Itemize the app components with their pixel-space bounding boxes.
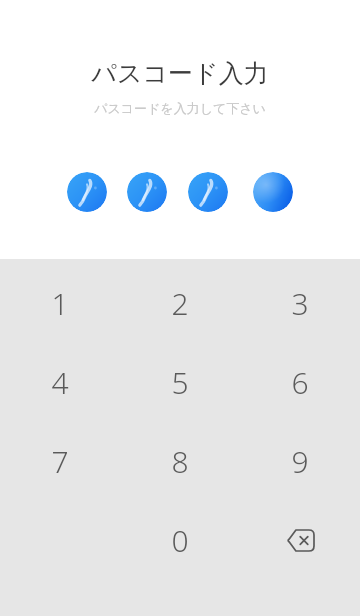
button[interactable]: 4 <box>0 343 120 422</box>
button[interactable]: 9 <box>240 422 360 501</box>
staticText: 9 <box>291 441 309 482</box>
button[interactable]: 2 <box>120 264 240 343</box>
staticText: 4 <box>51 362 69 403</box>
staticText: 8 <box>171 441 189 482</box>
staticText: 6 <box>291 362 309 403</box>
button[interactable]: Backspace <box>240 501 360 580</box>
button[interactable]: 6 <box>240 343 360 422</box>
staticText: パスコード入力 <box>91 58 269 89</box>
staticText: 1 <box>51 283 69 324</box>
staticText: 0 <box>171 520 189 561</box>
button[interactable]: 8 <box>120 422 240 501</box>
staticText: 7 <box>51 441 69 482</box>
staticText: 5 <box>171 362 189 403</box>
button[interactable]: 3 <box>240 264 360 343</box>
staticText: 3 <box>291 283 309 324</box>
button[interactable]: 0 <box>120 501 240 580</box>
staticText: 2 <box>171 283 189 324</box>
button[interactable]: 1 <box>0 264 120 343</box>
button[interactable]: 5 <box>120 343 240 422</box>
button[interactable]: 7 <box>0 422 120 501</box>
staticText: パスコードを入力して下さい <box>94 100 266 116</box>
